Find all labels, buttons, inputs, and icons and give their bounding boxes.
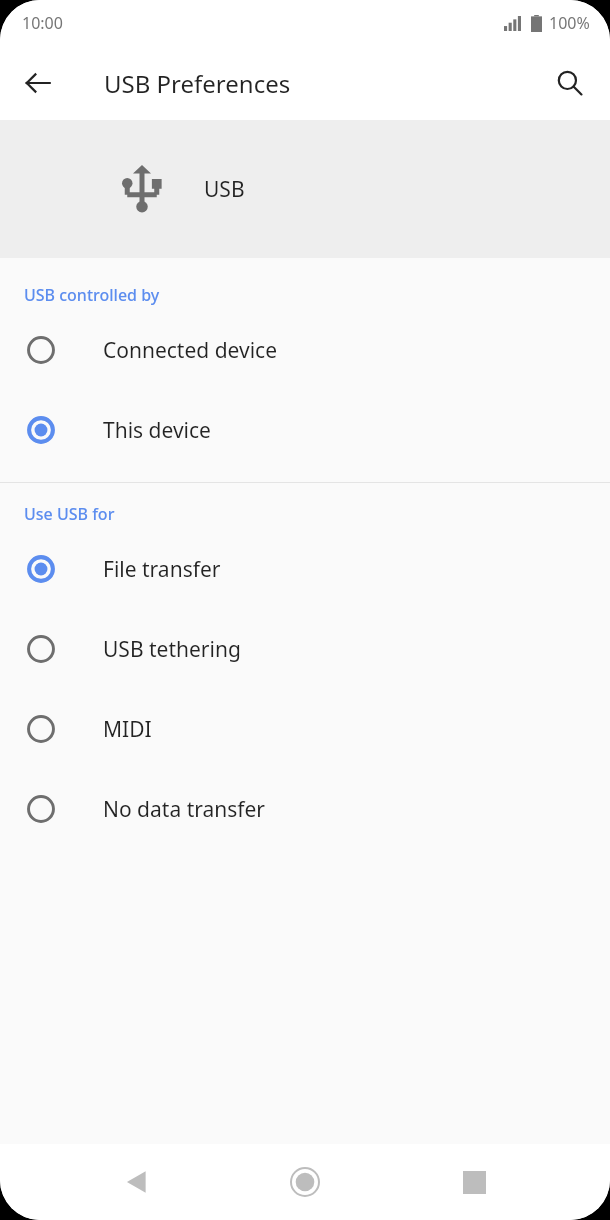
button[interactable]: USB tethering <box>0 609 610 689</box>
button[interactable]: Back <box>105 1150 169 1214</box>
staticText: Connected device <box>103 336 278 365</box>
button[interactable]: MIDI <box>0 689 610 769</box>
staticText: File transfer <box>103 555 221 584</box>
staticText: 10:00 <box>22 12 63 34</box>
button[interactable]: Back <box>12 57 64 109</box>
staticText: USB controlled by <box>24 284 160 306</box>
button[interactable]: Connected device <box>0 310 610 390</box>
staticText: MIDI <box>103 715 152 744</box>
staticText: 100% <box>549 12 590 34</box>
staticText: USB <box>204 175 245 204</box>
button[interactable]: File transfer <box>0 529 610 609</box>
staticText: USB Preferences <box>104 67 291 100</box>
staticText: USB tethering <box>103 635 241 664</box>
button[interactable]: Search <box>544 57 596 109</box>
button[interactable]: No data transfer <box>0 769 610 849</box>
button[interactable]: This device <box>0 390 610 470</box>
staticText: This device <box>103 416 211 445</box>
button[interactable]: Recent apps <box>442 1150 506 1214</box>
staticText: Use USB for <box>24 503 115 525</box>
button[interactable]: Home <box>273 1150 337 1214</box>
staticText: No data transfer <box>103 795 266 824</box>
